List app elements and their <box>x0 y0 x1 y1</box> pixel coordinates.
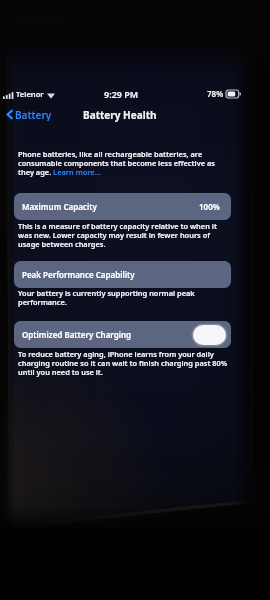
staticText: Peak Performance Capability <box>22 269 135 280</box>
staticText: This is a measure of battery capacity re… <box>18 221 228 249</box>
button[interactable]: Optimized Battery Charging <box>14 321 231 348</box>
staticText: 78% <box>207 88 224 99</box>
button[interactable]: Maximum Capacity <box>14 193 231 220</box>
staticText: Optimized Battery Charging <box>22 329 132 340</box>
staticText: Battery Health <box>83 108 157 122</box>
button[interactable]: Battery 78 percent <box>207 88 241 99</box>
button[interactable]: Phone batteries, like all rechargeable b… <box>18 149 228 177</box>
staticText: Telenor <box>16 89 44 99</box>
staticText: Battery <box>15 108 52 121</box>
button[interactable]: Battery <box>5 106 54 123</box>
staticText: Maximum Capacity <box>22 201 97 212</box>
button[interactable]: Carrier Telenor, signal strength <box>3 89 55 99</box>
staticText: 100% <box>199 201 220 212</box>
button[interactable]: Peak Performance Capability <box>14 261 231 288</box>
staticText: To reduce battery aging, iPhone learns f… <box>18 349 228 377</box>
button[interactable]: Optimized Battery Charging, on <box>193 325 226 345</box>
staticText: 9:29 PM <box>104 88 139 100</box>
staticText: Your battery is currently supporting nor… <box>18 288 228 307</box>
